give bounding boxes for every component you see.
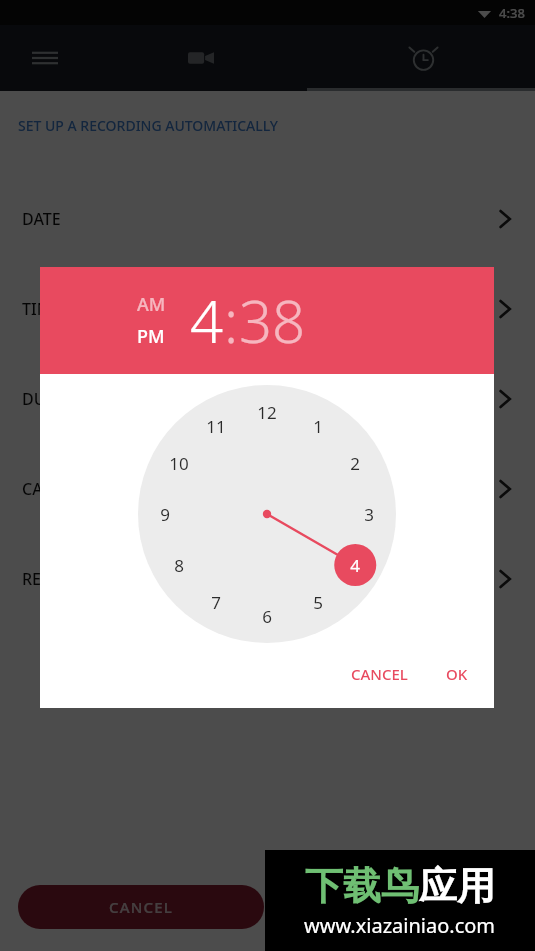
staticText: 7	[211, 591, 221, 614]
staticText: 11	[206, 415, 226, 438]
staticText: www.xiazainiao.com	[304, 912, 496, 939]
staticText: 10	[169, 452, 189, 475]
staticText: 3	[364, 503, 374, 526]
button[interactable]: 12	[250, 395, 284, 429]
button[interactable]: 1	[301, 409, 335, 443]
button[interactable]: 11	[199, 409, 233, 443]
button[interactable]: Alarm	[312, 25, 535, 91]
button[interactable]: CAMERA	[0, 444, 535, 534]
button[interactable]: CANCEL	[18, 885, 264, 929]
staticText: OK	[446, 664, 468, 684]
staticText: 9	[160, 503, 170, 526]
button[interactable]: DURATION	[0, 354, 535, 444]
button[interactable]: RESOLUTION	[0, 534, 535, 624]
staticText: 4	[190, 281, 224, 360]
button[interactable]: 5	[301, 585, 335, 619]
staticText: PM	[137, 324, 165, 349]
staticText: 6	[262, 605, 272, 628]
staticText: 2	[350, 452, 360, 475]
button[interactable]: 4	[338, 548, 372, 582]
staticText: CAMERA	[22, 478, 87, 500]
staticText: SET UP A RECORDING AUTOMATICALLY	[18, 116, 278, 135]
button[interactable]: OK	[436, 656, 478, 692]
button[interactable]: 10	[162, 446, 196, 480]
staticText: CANCEL	[109, 897, 174, 917]
button[interactable]: 2	[338, 446, 372, 480]
button[interactable]: AM	[137, 292, 166, 317]
button[interactable]: CANCEL	[341, 656, 418, 692]
staticText: 8	[174, 554, 184, 577]
staticText: 4	[350, 554, 360, 577]
staticText: 5	[313, 591, 323, 614]
staticText: 12	[257, 401, 277, 424]
staticText: DATE	[22, 208, 61, 230]
button[interactable]: 9	[148, 497, 182, 531]
button[interactable]: 38	[239, 281, 306, 360]
button[interactable]: 8	[162, 548, 196, 582]
button[interactable]: TIME	[0, 264, 535, 354]
staticText: 应用	[419, 862, 495, 910]
button[interactable]: DATE	[0, 174, 535, 264]
button[interactable]: Video	[90, 25, 312, 91]
button[interactable]: 4	[190, 281, 224, 360]
staticText: CANCEL	[351, 664, 408, 684]
staticText: 下载鸟	[305, 862, 419, 910]
staticText: RESOLUTION	[22, 568, 123, 590]
staticText: AM	[137, 292, 166, 317]
staticText: DURATION	[22, 388, 105, 410]
button[interactable]: 3	[352, 497, 386, 531]
button[interactable]: 7	[199, 585, 233, 619]
button[interactable]: Menu	[0, 25, 90, 91]
staticText: TIME	[22, 298, 61, 320]
staticText: 1	[313, 415, 323, 438]
staticText: 38	[239, 281, 306, 360]
button[interactable]: PM	[137, 324, 165, 349]
button[interactable]: 6	[250, 599, 284, 633]
staticText: 4:38	[499, 4, 525, 22]
staticText: :	[224, 281, 239, 360]
